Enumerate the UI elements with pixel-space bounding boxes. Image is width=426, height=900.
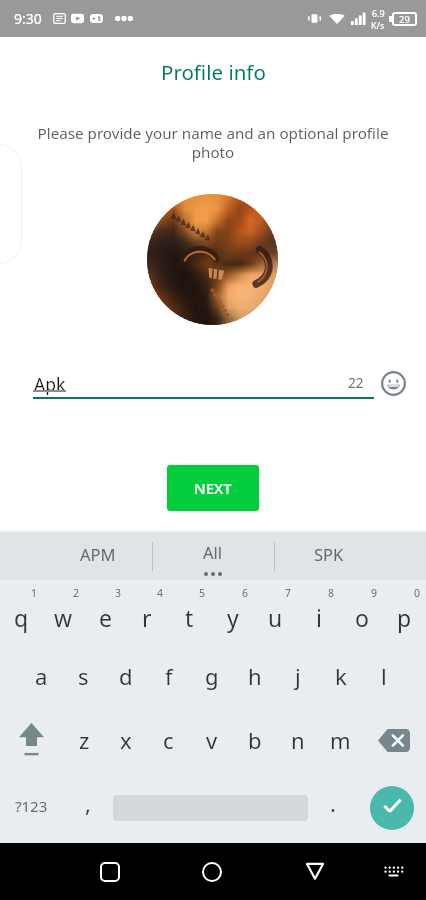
staticText: 2: [73, 586, 80, 600]
staticText: ?123: [15, 796, 48, 816]
staticText: 9:30: [14, 9, 42, 28]
staticText: u: [268, 602, 283, 633]
staticText: 4: [157, 586, 164, 600]
button[interactable]: x: [105, 708, 147, 772]
staticText: SPK: [314, 543, 344, 565]
staticText: y: [227, 602, 239, 633]
button[interactable]: f: [147, 644, 190, 708]
button[interactable]: NEXT: [167, 465, 259, 511]
button[interactable]: v: [190, 708, 233, 772]
staticText: 0: [414, 586, 421, 600]
button[interactable]: h: [233, 644, 276, 708]
staticText: 1: [31, 586, 38, 600]
button[interactable]: 8: [297, 580, 340, 644]
staticText: m: [330, 725, 351, 755]
button[interactable]: a: [20, 644, 62, 708]
button[interactable]: Recents: [88, 843, 132, 900]
staticText: c: [163, 725, 174, 755]
staticText: j: [295, 661, 301, 691]
button[interactable]: n: [276, 708, 319, 772]
staticText: p: [397, 602, 412, 633]
button[interactable]: Enter: [370, 786, 414, 830]
button[interactable]: Hide keyboard: [371, 843, 415, 900]
staticText: o: [355, 602, 369, 633]
staticText: 6.9: [372, 7, 385, 19]
button[interactable]: k: [319, 644, 362, 708]
button[interactable]: Backspace: [362, 708, 426, 772]
button[interactable]: c: [147, 708, 190, 772]
staticText: z: [79, 725, 90, 755]
staticText: d: [119, 661, 133, 691]
button[interactable]: 7: [254, 580, 297, 644]
staticText: t: [185, 602, 194, 633]
button[interactable]: 0: [383, 580, 426, 644]
button[interactable]: ,: [62, 772, 113, 843]
button[interactable]: 4: [126, 580, 168, 644]
staticText: 29: [399, 13, 410, 26]
button[interactable]: j: [276, 644, 319, 708]
button[interactable]: g: [190, 644, 233, 708]
button[interactable]: b: [233, 708, 276, 772]
button[interactable]: l: [362, 644, 405, 708]
staticText: 9: [371, 586, 378, 600]
button[interactable]: 5: [168, 580, 211, 644]
button[interactable]: 3: [84, 580, 126, 644]
staticText: f: [165, 661, 173, 691]
button[interactable]: .: [308, 772, 357, 843]
staticText: Please provide your name and an optional…: [28, 123, 398, 163]
button[interactable]: 1: [0, 580, 42, 644]
staticText: h: [248, 661, 262, 691]
button[interactable]: 9: [340, 580, 383, 644]
staticText: i: [316, 602, 322, 633]
staticText: 22: [348, 374, 364, 392]
staticText: All: [203, 541, 223, 563]
staticText: 3: [115, 586, 122, 600]
staticText: x: [120, 725, 132, 755]
staticText: Profile info: [161, 58, 266, 86]
button[interactable]: m: [319, 708, 362, 772]
button[interactable]: 6: [211, 580, 254, 644]
staticText: q: [14, 602, 29, 633]
button[interactable]: Profile photo: [147, 194, 278, 325]
staticText: .: [330, 788, 336, 818]
staticText: r: [142, 602, 152, 633]
staticText: v: [206, 725, 218, 755]
staticText: g: [205, 661, 219, 691]
staticText: e: [99, 602, 112, 633]
staticText: APM: [80, 543, 116, 565]
staticText: b: [248, 725, 262, 755]
staticText: Apk: [34, 372, 66, 396]
staticText: 5: [199, 586, 206, 600]
button[interactable]: 2: [42, 580, 84, 644]
staticText: a: [35, 661, 48, 691]
staticText: l: [381, 661, 387, 691]
staticText: n: [291, 725, 305, 755]
staticText: K/s: [371, 19, 385, 31]
button[interactable]: d: [104, 644, 147, 708]
button[interactable]: APM: [30, 532, 166, 580]
staticText: 7: [285, 586, 292, 600]
button[interactable]: SPK: [262, 532, 396, 580]
staticText: w: [54, 602, 73, 633]
staticText: ,: [85, 788, 91, 818]
staticText: NEXT: [194, 478, 232, 498]
staticText: 8: [328, 586, 335, 600]
button[interactable]: Emoji picker: [379, 369, 408, 398]
button[interactable]: ?123: [0, 772, 62, 843]
button[interactable]: Back: [293, 843, 337, 900]
staticText: k: [335, 661, 347, 691]
button[interactable]: Home: [190, 843, 234, 900]
button[interactable]: s: [62, 644, 104, 708]
button[interactable]: All: [160, 532, 265, 580]
staticText: s: [78, 661, 89, 691]
button[interactable]: Shift: [0, 708, 63, 772]
button[interactable]: z: [63, 708, 105, 772]
staticText: 6: [242, 586, 249, 600]
